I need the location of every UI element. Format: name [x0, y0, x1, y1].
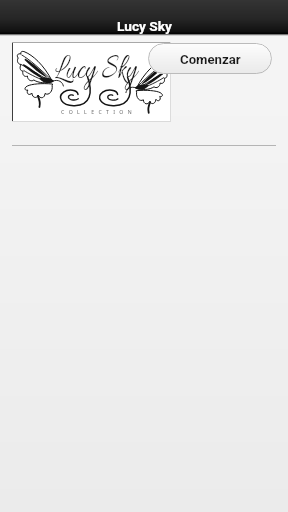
button[interactable]: Lucy Sky Collection logo — [12, 42, 171, 122]
staticText: Comenzar — [180, 52, 241, 67]
button[interactable]: Comenzar — [148, 43, 272, 74]
staticText: Lucy Sky — [55, 48, 137, 93]
staticText: C O L L E C T I O N — [61, 108, 134, 115]
staticText: Lucy Sky — [117, 18, 172, 34]
